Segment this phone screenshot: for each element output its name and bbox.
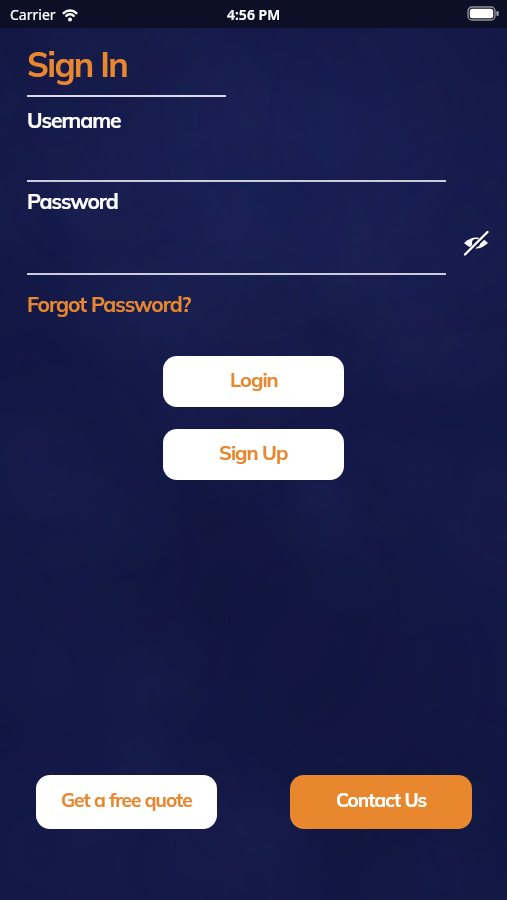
button[interactable]: Forgot Password? [27, 291, 191, 317]
staticText: Password [27, 188, 118, 214]
staticText: Carrier [10, 5, 56, 24]
staticText: Sign Up [219, 440, 288, 465]
staticText: Forgot Password? [27, 291, 191, 317]
button[interactable]: Sign Up [163, 429, 344, 480]
staticText: Sign In [27, 43, 128, 86]
button[interactable]: Login [163, 356, 344, 407]
button[interactable]: Contact Us [290, 775, 472, 829]
staticText: Username [27, 107, 121, 133]
button[interactable] [463, 230, 489, 256]
button[interactable]: Get a free quote [36, 775, 217, 829]
staticText: Get a free quote [61, 788, 192, 812]
staticText: 4:56 PM [227, 5, 281, 24]
staticText: Login [230, 367, 278, 392]
staticText: Contact Us [336, 788, 427, 812]
